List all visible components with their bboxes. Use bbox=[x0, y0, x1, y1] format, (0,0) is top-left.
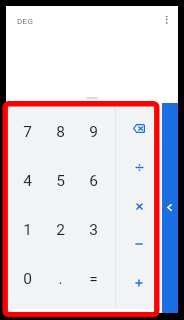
button[interactable]: 9 bbox=[77, 107, 110, 156]
staticText: 6 bbox=[89, 172, 98, 190]
button[interactable]: Multiply bbox=[121, 187, 157, 225]
button[interactable]: More options bbox=[154, 10, 174, 30]
staticText: = bbox=[89, 270, 98, 288]
button[interactable]: . bbox=[44, 254, 77, 303]
button[interactable]: 8 bbox=[44, 107, 77, 156]
button[interactable]: = bbox=[77, 254, 110, 303]
staticText: 5 bbox=[56, 172, 65, 190]
staticText: 8 bbox=[56, 123, 65, 141]
staticText: 9 bbox=[89, 123, 98, 141]
staticText: 2 bbox=[56, 221, 65, 239]
staticText: 3 bbox=[89, 221, 98, 239]
button[interactable]: 4 bbox=[11, 156, 44, 205]
staticText: 4 bbox=[23, 172, 32, 190]
button[interactable]: Delete bbox=[121, 109, 157, 147]
button[interactable]: 7 bbox=[11, 107, 44, 156]
button[interactable]: 0 bbox=[11, 254, 44, 303]
staticText: 1 bbox=[23, 221, 32, 239]
staticText: . bbox=[58, 270, 63, 288]
staticText: DEG bbox=[17, 17, 34, 26]
button[interactable]: 1 bbox=[11, 205, 44, 254]
button[interactable]: 3 bbox=[77, 205, 110, 254]
button[interactable]: 6 bbox=[77, 156, 110, 205]
button[interactable]: Plus bbox=[121, 264, 157, 302]
button[interactable]: 5 bbox=[44, 156, 77, 205]
button[interactable]: Divide bbox=[121, 148, 157, 186]
button[interactable]: DEG bbox=[14, 12, 40, 30]
staticText: 0 bbox=[23, 270, 32, 288]
button[interactable]: Minus bbox=[121, 225, 157, 263]
button[interactable]: Open scientific keypad bbox=[162, 103, 178, 313]
button[interactable]: 2 bbox=[44, 205, 77, 254]
staticText: 7 bbox=[23, 123, 32, 141]
